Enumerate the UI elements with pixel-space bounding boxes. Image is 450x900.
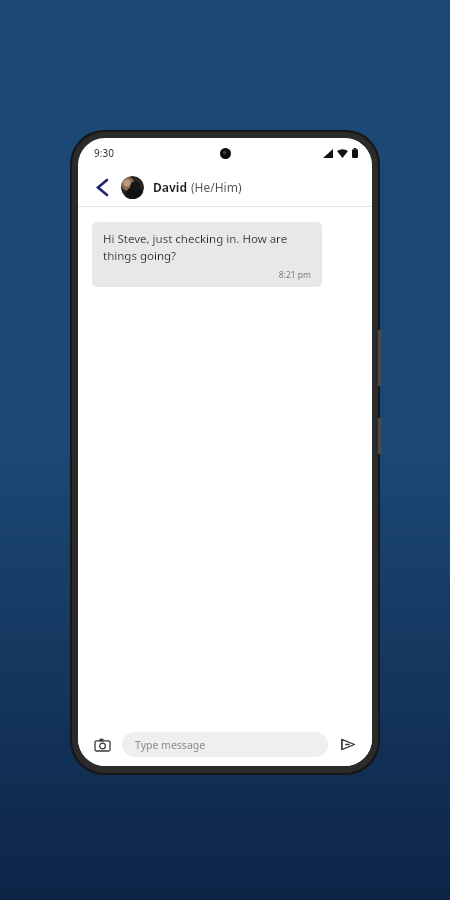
button[interactable]: Type message (122, 732, 328, 757)
button[interactable]: Profile photo (121, 176, 144, 199)
staticText: 9:30 (94, 146, 114, 160)
button[interactable]: Send (334, 730, 362, 758)
staticText: 8:21 pm (103, 269, 311, 281)
button[interactable]: Back (88, 173, 116, 201)
button[interactable]: Camera (88, 730, 116, 758)
staticText: David (153, 179, 191, 195)
staticText: Hi Steve, just checking in. How are thin… (103, 231, 311, 264)
button[interactable]: Hi Steve, just checking in. How are thin… (92, 222, 322, 287)
staticText: Type message (135, 738, 206, 752)
staticText: (He/Him) (191, 179, 242, 195)
